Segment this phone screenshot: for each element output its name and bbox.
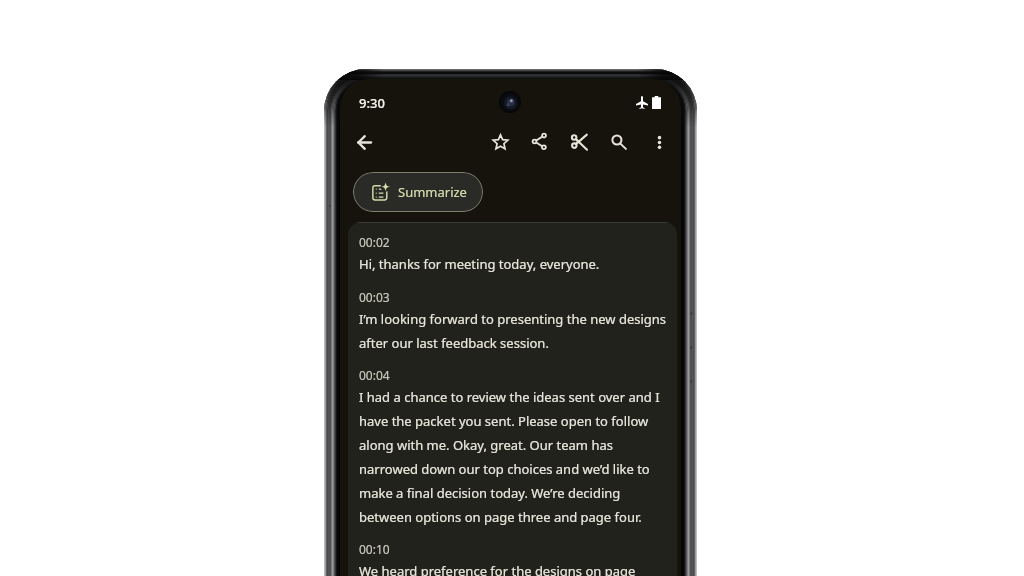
staticText: 9:30 [359,94,385,112]
staticText: Hi, thanks for meeting today, everyone. [359,255,600,273]
button[interactable]: 00:10 [348,541,677,576]
staticText: 00:03 [359,289,390,305]
staticText: We heard preference for the designs on p… [359,562,670,576]
staticText: I’m looking forward to presenting the ne… [359,310,670,351]
staticText: 00:10 [359,541,390,557]
button[interactable]: Summarize [353,172,483,212]
staticText: 00:04 [359,367,390,383]
button[interactable]: Share [522,124,558,160]
button[interactable]: Cut [562,124,598,160]
staticText: I had a chance to review the ideas sent … [359,388,670,525]
button[interactable]: 00:03 [348,289,677,351]
button[interactable]: Search [601,124,637,160]
button[interactable]: 00:02 [348,234,677,273]
button[interactable]: 00:04 [348,367,677,525]
button[interactable]: More options [641,124,677,160]
staticText: Summarize [398,183,467,201]
button[interactable]: Back [346,124,382,160]
staticText: 00:02 [359,234,390,250]
button[interactable]: Favorite [482,124,518,160]
